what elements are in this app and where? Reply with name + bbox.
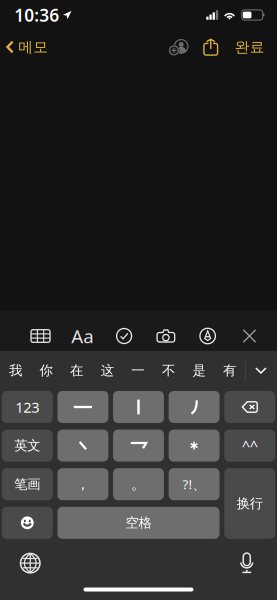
button[interactable]: Markup xyxy=(187,315,228,356)
staticText: ， xyxy=(75,475,90,493)
button[interactable]: 。 xyxy=(113,468,164,500)
button[interactable]: Wildcard stroke xyxy=(169,430,220,462)
button[interactable]: Shu stroke xyxy=(113,391,164,423)
button[interactable]: Dian stroke xyxy=(57,430,108,462)
staticText: ^^ xyxy=(242,436,258,455)
button[interactable]: 완료 xyxy=(228,30,277,64)
button[interactable]: ， xyxy=(57,468,108,500)
button[interactable]: More candidates xyxy=(245,351,277,390)
button[interactable]: 英文 xyxy=(2,430,53,462)
staticText: 英文 xyxy=(14,437,40,454)
button[interactable]: Delete xyxy=(224,391,275,423)
button[interactable]: ^^ xyxy=(224,430,275,462)
button[interactable]: Dictation xyxy=(226,546,268,580)
button[interactable]: Add People xyxy=(164,30,194,64)
staticText: 你 xyxy=(39,362,52,379)
staticText: 换行 xyxy=(237,495,263,512)
staticText: Aa xyxy=(71,324,93,348)
button[interactable]: 我 xyxy=(0,351,31,390)
button[interactable]: Emoji xyxy=(2,507,53,539)
button[interactable]: 메모 xyxy=(0,30,56,64)
staticText: 我 xyxy=(9,362,22,379)
button[interactable]: 你 xyxy=(31,351,61,390)
button[interactable]: 在 xyxy=(61,351,92,390)
button[interactable]: Zhe stroke xyxy=(113,430,164,462)
staticText: 10:36 xyxy=(14,3,59,26)
button[interactable]: 有 xyxy=(214,351,245,390)
button[interactable]: Heng stroke xyxy=(57,391,108,423)
button[interactable]: Camera xyxy=(145,315,186,356)
button[interactable]: Close xyxy=(229,315,270,356)
button[interactable]: ?!、 xyxy=(169,468,220,500)
button[interactable]: Aa xyxy=(62,315,103,356)
button[interactable]: 这 xyxy=(92,351,122,390)
staticText: 메모 xyxy=(18,38,48,56)
button[interactable]: 换行 xyxy=(224,468,275,539)
button[interactable]: 笔画 xyxy=(2,468,53,500)
button[interactable]: 123 xyxy=(2,391,53,423)
button[interactable]: 是 xyxy=(184,351,214,390)
button[interactable]: 空格 xyxy=(57,507,220,539)
button[interactable]: Table xyxy=(20,315,61,356)
button[interactable]: Share xyxy=(194,30,228,64)
staticText: 。 xyxy=(131,475,146,493)
button[interactable]: Checklist xyxy=(104,315,145,356)
staticText: 空格 xyxy=(125,515,151,531)
staticText: 在 xyxy=(70,362,83,379)
staticText: 这 xyxy=(101,362,114,379)
staticText: 不 xyxy=(162,362,175,379)
button[interactable]: Next keyboard xyxy=(9,546,51,580)
staticText: 一 xyxy=(131,362,144,379)
staticText: 有 xyxy=(223,362,236,379)
staticText: 완료 xyxy=(235,38,265,56)
staticText: 是 xyxy=(192,362,205,379)
staticText: ?!、 xyxy=(183,475,206,493)
staticText: 笔画 xyxy=(14,476,40,492)
button[interactable]: 不 xyxy=(153,351,184,390)
button[interactable]: Pie stroke xyxy=(169,391,220,423)
staticText: 123 xyxy=(15,397,39,417)
button[interactable]: 一 xyxy=(122,351,153,390)
